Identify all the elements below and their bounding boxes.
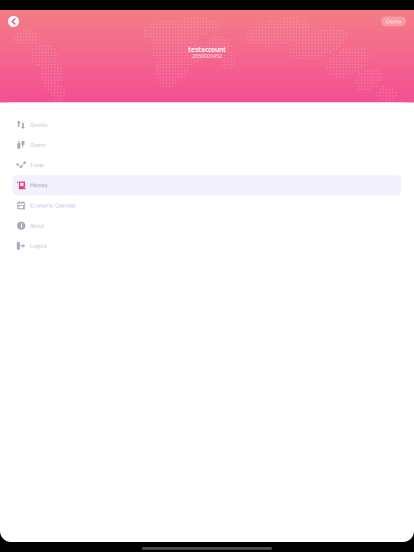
staticText: Demo <box>386 18 401 25</box>
button[interactable]: Charts <box>0 135 414 155</box>
button[interactable]: Economic Calendar <box>0 195 414 216</box>
staticText: Economic Calendar <box>30 202 76 209</box>
staticText: Trade <box>30 162 44 169</box>
staticText: Charts <box>30 141 46 148</box>
button[interactable]: History <box>0 175 414 195</box>
staticText: Logout <box>30 242 47 249</box>
staticText: History <box>30 182 48 189</box>
staticText: Quotes <box>30 121 48 128</box>
button[interactable]: About <box>0 216 414 236</box>
staticText: About <box>30 222 44 229</box>
staticText: testaccount <box>188 45 226 54</box>
button[interactable]: Demo <box>381 17 406 26</box>
staticText: 2050003452 <box>192 52 222 59</box>
button[interactable]: Logout <box>0 236 414 256</box>
button[interactable]: Back <box>3 11 23 31</box>
button[interactable]: Trade <box>0 155 414 175</box>
button[interactable]: Quotes <box>0 115 414 135</box>
